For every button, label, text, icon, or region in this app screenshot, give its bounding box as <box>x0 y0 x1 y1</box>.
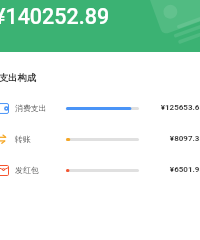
other: 转账 <box>0 134 9 145</box>
button[interactable]: 发红包 <box>0 155 200 186</box>
staticText: ¥8097.33 <box>134 134 200 143</box>
staticText: ¥140252.89 <box>0 4 110 29</box>
staticText: 消费支出 <box>15 103 47 113</box>
staticText: ¥6501.93 <box>134 165 200 174</box>
button[interactable]: 消费支出 <box>0 93 200 124</box>
staticText: 发红包 <box>15 165 39 175</box>
other: 发红包 <box>0 165 9 176</box>
staticText: 支出构成 <box>0 72 37 84</box>
staticText: ¥125653.63 <box>134 103 200 112</box>
staticText: 转账 <box>15 134 31 144</box>
button[interactable]: 转账 <box>0 124 200 155</box>
other: 消费支出 <box>0 103 9 114</box>
